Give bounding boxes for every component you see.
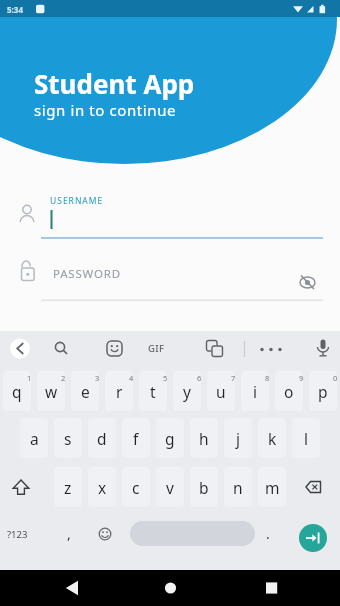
button[interactable]	[90, 517, 120, 557]
button[interactable]: s	[54, 418, 82, 458]
staticText: i	[253, 381, 257, 402]
button[interactable]	[294, 469, 334, 509]
button[interactable]: f	[122, 418, 150, 458]
staticText: Student App	[34, 66, 195, 101]
staticText: 5	[163, 373, 168, 383]
button[interactable]: i	[241, 371, 269, 411]
button[interactable]: r	[105, 371, 133, 411]
staticText: w	[45, 381, 58, 402]
button[interactable]: u	[207, 371, 235, 411]
button[interactable]: h	[190, 418, 218, 458]
button[interactable]: b	[190, 467, 218, 507]
button[interactable]	[257, 335, 285, 363]
button[interactable]: v	[156, 467, 184, 507]
staticText: v	[166, 477, 174, 498]
button[interactable]	[114, 570, 227, 606]
staticText: x	[98, 477, 107, 498]
staticText: l	[304, 428, 308, 449]
button[interactable]: g	[156, 418, 184, 458]
staticText: y	[183, 381, 191, 402]
button[interactable]	[309, 335, 337, 363]
staticText: 0	[333, 373, 338, 383]
staticText: 6	[197, 373, 202, 383]
staticText: r	[116, 381, 123, 402]
staticText: PASSWORD	[53, 266, 121, 282]
staticText: 2	[61, 373, 66, 383]
button[interactable]: t	[139, 371, 167, 411]
button[interactable]	[299, 524, 327, 552]
button[interactable]	[130, 521, 255, 546]
staticText: g	[165, 428, 175, 449]
staticText: t	[150, 381, 156, 402]
button[interactable]: x	[88, 467, 116, 507]
staticText: 4	[129, 373, 134, 383]
button[interactable]: a	[20, 418, 48, 458]
staticText: m	[265, 477, 280, 498]
button[interactable]: l	[292, 418, 320, 458]
button[interactable]: k	[258, 418, 286, 458]
staticText: s	[64, 428, 72, 449]
staticText: k	[268, 428, 277, 449]
staticText: ?123	[7, 528, 28, 541]
staticText: n	[233, 477, 243, 498]
staticText: 8	[265, 373, 270, 383]
button[interactable]	[256, 517, 286, 557]
staticText: j	[236, 428, 240, 449]
staticText: ,	[67, 524, 71, 543]
staticText: c	[132, 477, 140, 498]
button[interactable]: d	[88, 418, 116, 458]
button[interactable]: n	[224, 467, 252, 507]
staticText: 9	[299, 373, 304, 383]
staticText: b	[199, 477, 209, 498]
button[interactable]: e	[71, 371, 99, 411]
staticText: p	[318, 381, 328, 402]
staticText: d	[97, 428, 107, 449]
button[interactable]	[200, 335, 228, 363]
button[interactable]: y	[173, 371, 201, 411]
staticText: 1	[27, 373, 32, 383]
button[interactable]	[54, 517, 84, 557]
staticText: .	[266, 524, 270, 543]
staticText: a	[30, 428, 39, 449]
staticText: z	[64, 477, 72, 498]
staticText: 5:34	[7, 4, 23, 15]
button[interactable]	[6, 335, 34, 363]
staticText: e	[81, 381, 90, 402]
staticText: USERNAME	[50, 195, 104, 207]
staticText: o	[284, 381, 294, 402]
button[interactable]	[227, 570, 340, 606]
button[interactable]	[0, 570, 114, 606]
staticText: f	[133, 428, 139, 449]
staticText: 3	[95, 373, 100, 383]
button[interactable]	[293, 268, 323, 298]
button[interactable]: c	[122, 467, 150, 507]
staticText: sign in to continue	[34, 100, 177, 120]
button[interactable]: z	[54, 467, 82, 507]
staticText: h	[199, 428, 209, 449]
button[interactable]	[100, 335, 128, 363]
staticText: 7	[231, 373, 236, 383]
button[interactable]: p	[309, 371, 337, 411]
button[interactable]: w	[37, 371, 65, 411]
button[interactable]: m	[258, 467, 286, 507]
button[interactable]: PASSWORD	[10, 256, 330, 306]
button[interactable]: j	[224, 418, 252, 458]
staticText: q	[12, 381, 22, 402]
button[interactable]	[3, 517, 37, 557]
button[interactable]	[146, 335, 174, 363]
staticText: GIF	[148, 342, 165, 355]
button[interactable]: o	[275, 371, 303, 411]
button[interactable]: USERNAME	[10, 192, 330, 244]
staticText: u	[216, 381, 226, 402]
button[interactable]: q	[3, 371, 31, 411]
button[interactable]	[6, 469, 46, 509]
button[interactable]	[46, 335, 74, 363]
